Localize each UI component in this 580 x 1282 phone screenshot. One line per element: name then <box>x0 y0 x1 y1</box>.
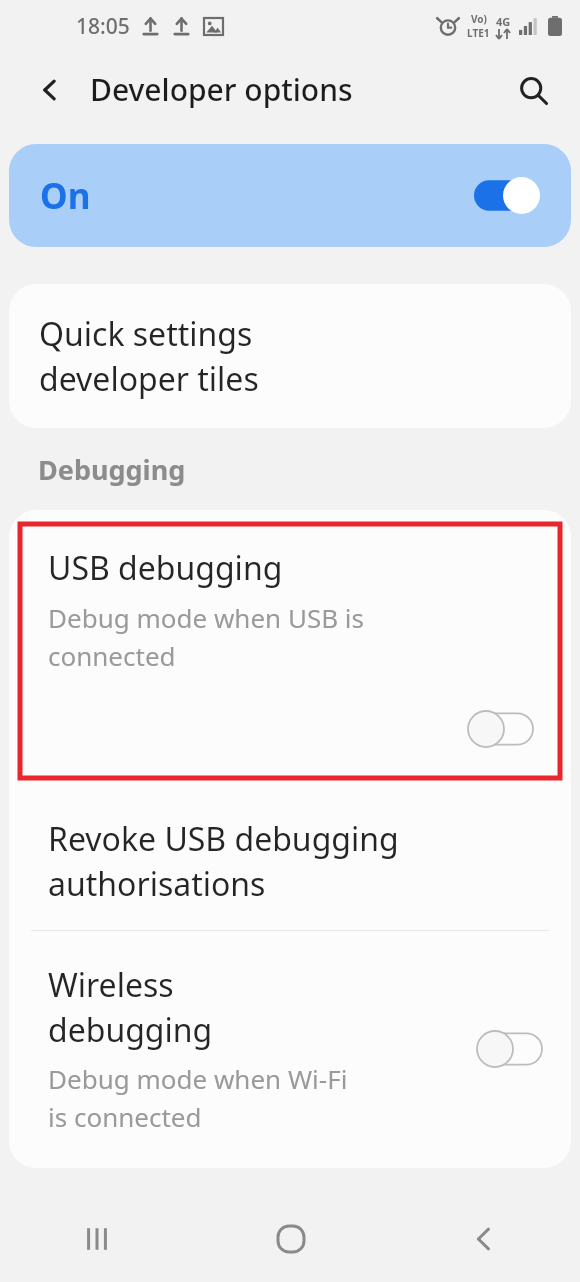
staticText: Wireless debugging <box>48 963 213 1052</box>
button[interactable]: Home <box>194 1195 387 1282</box>
button[interactable]: Back <box>26 66 74 114</box>
staticText: Debugging <box>38 451 580 488</box>
button[interactable]: Toggle <box>467 710 533 748</box>
button[interactable]: Quick settings developer tiles <box>9 284 571 428</box>
staticText: 4G <box>496 14 511 29</box>
button[interactable]: Toggle <box>476 1030 542 1068</box>
button[interactable]: Back <box>387 1195 580 1282</box>
staticText: Vo) <box>471 12 487 26</box>
staticText: Developer options <box>90 69 353 110</box>
staticText: Debug mode when Wi-Fi is connected <box>48 1061 348 1134</box>
staticText: LTE1 <box>467 26 490 40</box>
button[interactable]: On <box>9 144 571 247</box>
staticText: USB debugging <box>48 546 283 590</box>
button[interactable]: USB debugging <box>20 524 560 778</box>
button[interactable]: Revoke USB debugging authorisations <box>9 792 571 930</box>
button[interactable]: Wireless debugging <box>9 931 571 1166</box>
button[interactable]: Search <box>508 65 558 115</box>
staticText: On <box>40 172 91 220</box>
staticText: 18:05 <box>76 12 130 41</box>
staticText: Revoke USB debugging authorisations <box>48 817 399 905</box>
button[interactable]: Recents <box>0 1195 194 1282</box>
staticText: Quick settings developer tiles <box>39 312 259 400</box>
staticText: Debug mode when USB is connected <box>48 600 365 673</box>
